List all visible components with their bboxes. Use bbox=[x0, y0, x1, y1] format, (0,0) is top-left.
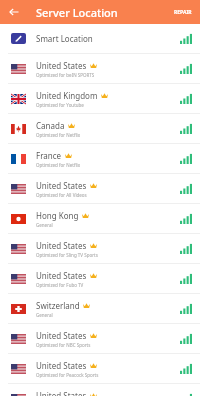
button[interactable]: United States bbox=[0, 324, 200, 354]
staticText: Server Location bbox=[36, 5, 118, 20]
button[interactable]: Smart Location bbox=[0, 24, 200, 54]
staticText: United States bbox=[36, 60, 87, 71]
staticText: REPAIR bbox=[174, 9, 192, 16]
button[interactable]: Back bbox=[5, 3, 23, 21]
staticText: United States bbox=[36, 360, 87, 371]
staticText: Switzerland bbox=[36, 300, 80, 311]
staticText: United Kingdom bbox=[36, 90, 98, 101]
button[interactable]: United States bbox=[0, 234, 200, 264]
staticText: Optimized for NBC Sports bbox=[36, 342, 91, 348]
button[interactable]: United States bbox=[0, 354, 200, 384]
button[interactable]: REPAIR bbox=[170, 6, 196, 19]
button[interactable]: Hong Kong bbox=[0, 204, 200, 234]
staticText: General bbox=[36, 222, 53, 228]
staticText: United States bbox=[36, 270, 87, 281]
button[interactable]: United States bbox=[0, 54, 200, 84]
staticText: United States bbox=[36, 180, 87, 191]
staticText: Hong Kong bbox=[36, 210, 79, 221]
staticText: Optimized for All Videos bbox=[36, 192, 87, 198]
staticText: Smart Location bbox=[36, 33, 93, 44]
staticText: Optimized for Youtube bbox=[36, 102, 84, 108]
staticText: Optimized for beIN SPORTS bbox=[36, 72, 95, 78]
staticText: Optimized for Peacock Sports bbox=[36, 372, 99, 378]
staticText: United States bbox=[36, 390, 87, 396]
button[interactable]: United States bbox=[0, 264, 200, 294]
staticText: United States bbox=[36, 240, 87, 251]
staticText: General bbox=[36, 312, 53, 318]
button[interactable]: United States bbox=[0, 384, 200, 396]
button[interactable]: United States bbox=[0, 174, 200, 204]
button[interactable]: Canada bbox=[0, 114, 200, 144]
staticText: Optimized for Netflix bbox=[36, 132, 81, 138]
staticText: France bbox=[36, 150, 62, 161]
staticText: Optimized for Netflix bbox=[36, 162, 81, 168]
staticText: United States bbox=[36, 330, 87, 341]
staticText: Canada bbox=[36, 120, 65, 131]
button[interactable]: Switzerland bbox=[0, 294, 200, 324]
staticText: Optimized for Fubo TV bbox=[36, 282, 84, 288]
button[interactable]: United Kingdom bbox=[0, 84, 200, 114]
staticText: Optimized for Sling TV Sports bbox=[36, 252, 98, 258]
button[interactable]: France bbox=[0, 144, 200, 174]
